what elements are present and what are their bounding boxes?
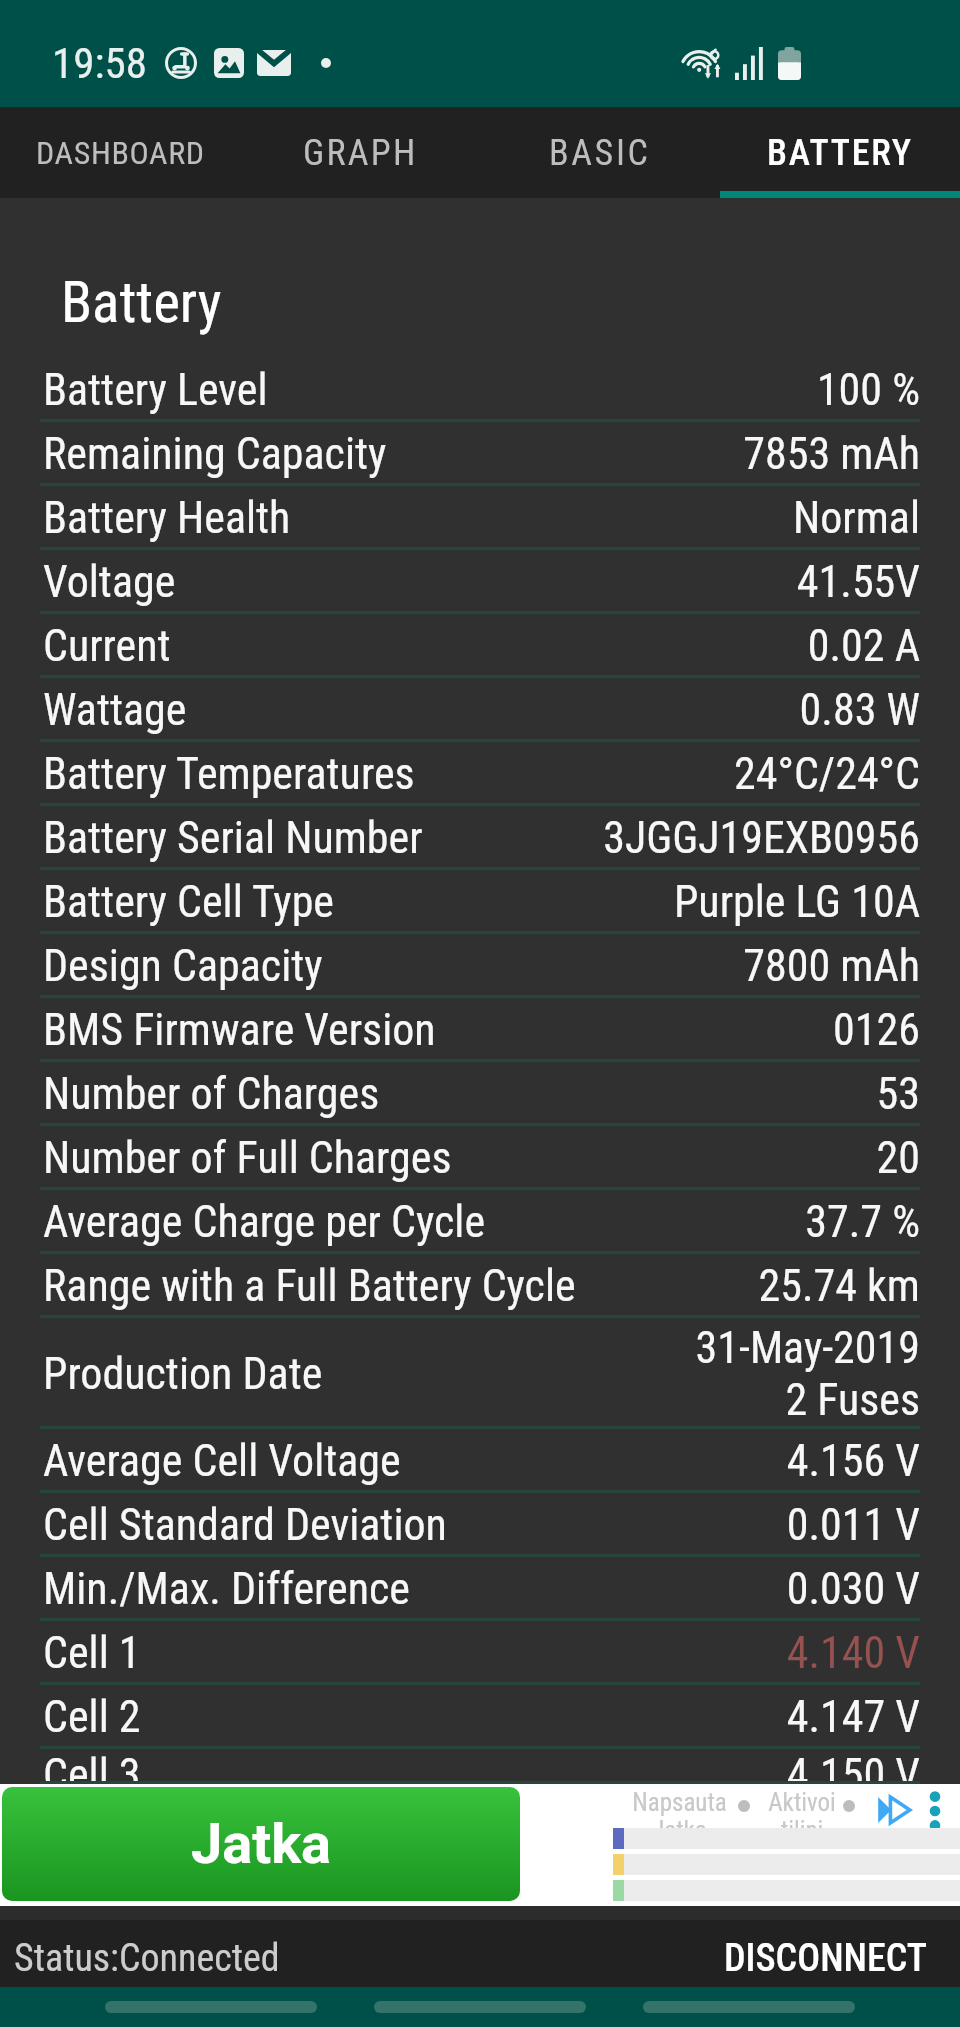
staticText: GRAPH [303, 132, 418, 174]
staticText: Number of Full Charges [43, 1132, 452, 1184]
staticText: Current [43, 620, 171, 672]
other: Signal [735, 47, 763, 80]
staticText: BATTERY [767, 132, 913, 174]
staticText: 0.83 W [799, 684, 920, 736]
staticText: Battery [61, 269, 222, 336]
staticText: Cell Standard Deviation [43, 1499, 447, 1551]
staticText: Normal [792, 492, 920, 544]
button[interactable]: Cell Standard Deviation [0, 1493, 960, 1557]
staticText: Cell 1 [43, 1627, 141, 1679]
staticText: Status:Connected [14, 1936, 280, 1981]
staticText: 20 [876, 1132, 920, 1184]
staticText: BASIC [549, 132, 651, 174]
staticText: 3JGGJ19EXB0956 [603, 812, 920, 864]
staticText: 41.55V [796, 556, 920, 608]
button[interactable]: Voltage [0, 550, 960, 614]
button[interactable]: Battery Temperatures [0, 742, 960, 806]
button[interactable]: Design Capacity [0, 934, 960, 998]
button[interactable]: BMS Firmware Version [0, 998, 960, 1062]
other: Scooter notification [165, 47, 197, 79]
other: Wi-Fi [684, 46, 722, 80]
staticText: Cell 3 [43, 1749, 141, 1784]
button[interactable]: Number of Full Charges [0, 1126, 960, 1190]
button[interactable]: Cell 3 [0, 1749, 960, 1784]
staticText: Average Cell Voltage [43, 1435, 401, 1487]
other: Mail [257, 46, 291, 80]
staticText: DISCONNECT [724, 1936, 928, 1981]
button[interactable]: Back [643, 2001, 855, 2013]
staticText: 100 % [816, 364, 920, 416]
button[interactable]: DASHBOARD [0, 107, 240, 198]
staticText: Number of Charges [43, 1068, 380, 1120]
button[interactable]: Recents [105, 2001, 317, 2013]
staticText: Jatka [191, 1811, 332, 1877]
staticText: 4.150 V [786, 1749, 920, 1784]
staticText: 0.011 V [786, 1499, 920, 1551]
staticText: Battery Level [43, 364, 268, 416]
staticText: Range with a Full Battery Cycle [43, 1260, 576, 1312]
other: Screenshot [214, 48, 244, 78]
staticText: Design Capacity [43, 940, 323, 992]
staticText: Cell 2 [43, 1691, 141, 1743]
staticText: 19:58 [52, 38, 147, 88]
button[interactable]: Remaining Capacity [0, 422, 960, 486]
staticText: Battery Temperatures [43, 748, 415, 800]
other: Ad info [876, 1792, 912, 1828]
staticText: Battery Serial Number [43, 812, 423, 864]
button[interactable]: Production Date [0, 1318, 960, 1429]
button[interactable]: Battery Cell Type [0, 870, 960, 934]
staticText: Voltage [43, 556, 176, 608]
staticText: 4.156 V [786, 1435, 920, 1487]
button[interactable]: Battery Level [0, 358, 960, 422]
button[interactable]: Cell 1 [0, 1621, 960, 1685]
staticText: Napsauta Jatka [632, 1788, 727, 1845]
staticText: DASHBOARD [36, 134, 205, 172]
staticText: 24°C/24°C [734, 748, 920, 800]
staticText: 53 [876, 1068, 920, 1120]
staticText: 37.7 % [805, 1196, 920, 1248]
staticText: Wattage [43, 684, 187, 736]
button[interactable]: Battery Health [0, 486, 960, 550]
staticText: Battery Health [43, 492, 291, 544]
button[interactable]: Jatka [2, 1787, 520, 1901]
staticText: Purple LG 10A [673, 876, 920, 928]
button[interactable]: Average Cell Voltage [0, 1429, 960, 1493]
staticText: 25.74 km [758, 1260, 920, 1312]
button[interactable]: More options [928, 1792, 942, 1830]
staticText: 4.140 V [786, 1627, 920, 1679]
staticText: 4.147 V [786, 1691, 920, 1743]
staticText: 0.02 A [807, 620, 920, 672]
staticText: 0.030 V [786, 1563, 920, 1615]
staticText: 31-May-2019 2 Fuses [695, 1322, 920, 1426]
button[interactable]: Battery Serial Number [0, 806, 960, 870]
button[interactable]: Current [0, 614, 960, 678]
staticText: Production Date [43, 1348, 323, 1400]
button[interactable]: Number of Charges [0, 1062, 960, 1126]
button[interactable]: BASIC [480, 107, 720, 198]
staticText: 0126 [833, 1004, 920, 1056]
staticText: 7800 mAh [743, 940, 920, 992]
button[interactable]: GRAPH [240, 107, 480, 198]
button[interactable]: DISCONNECT [724, 1924, 960, 1969]
button[interactable]: Wattage [0, 678, 960, 742]
button[interactable]: Home [374, 2001, 586, 2013]
staticText: BMS Firmware Version [43, 1004, 436, 1056]
staticText: Min./Max. Difference [43, 1563, 410, 1615]
button[interactable]: Cell 2 [0, 1685, 960, 1749]
staticText: Remaining Capacity [43, 428, 387, 480]
staticText: 7853 mAh [743, 428, 920, 480]
button[interactable]: Range with a Full Battery Cycle [0, 1254, 960, 1318]
staticText: Battery Cell Type [43, 876, 334, 928]
button[interactable]: BATTERY [720, 107, 960, 198]
staticText: Average Charge per Cycle [43, 1196, 486, 1248]
other: Battery [778, 47, 801, 80]
button[interactable]: Average Charge per Cycle [0, 1190, 960, 1254]
staticText: Aktivoi tilini [768, 1788, 836, 1845]
button[interactable]: Min./Max. Difference [0, 1557, 960, 1621]
